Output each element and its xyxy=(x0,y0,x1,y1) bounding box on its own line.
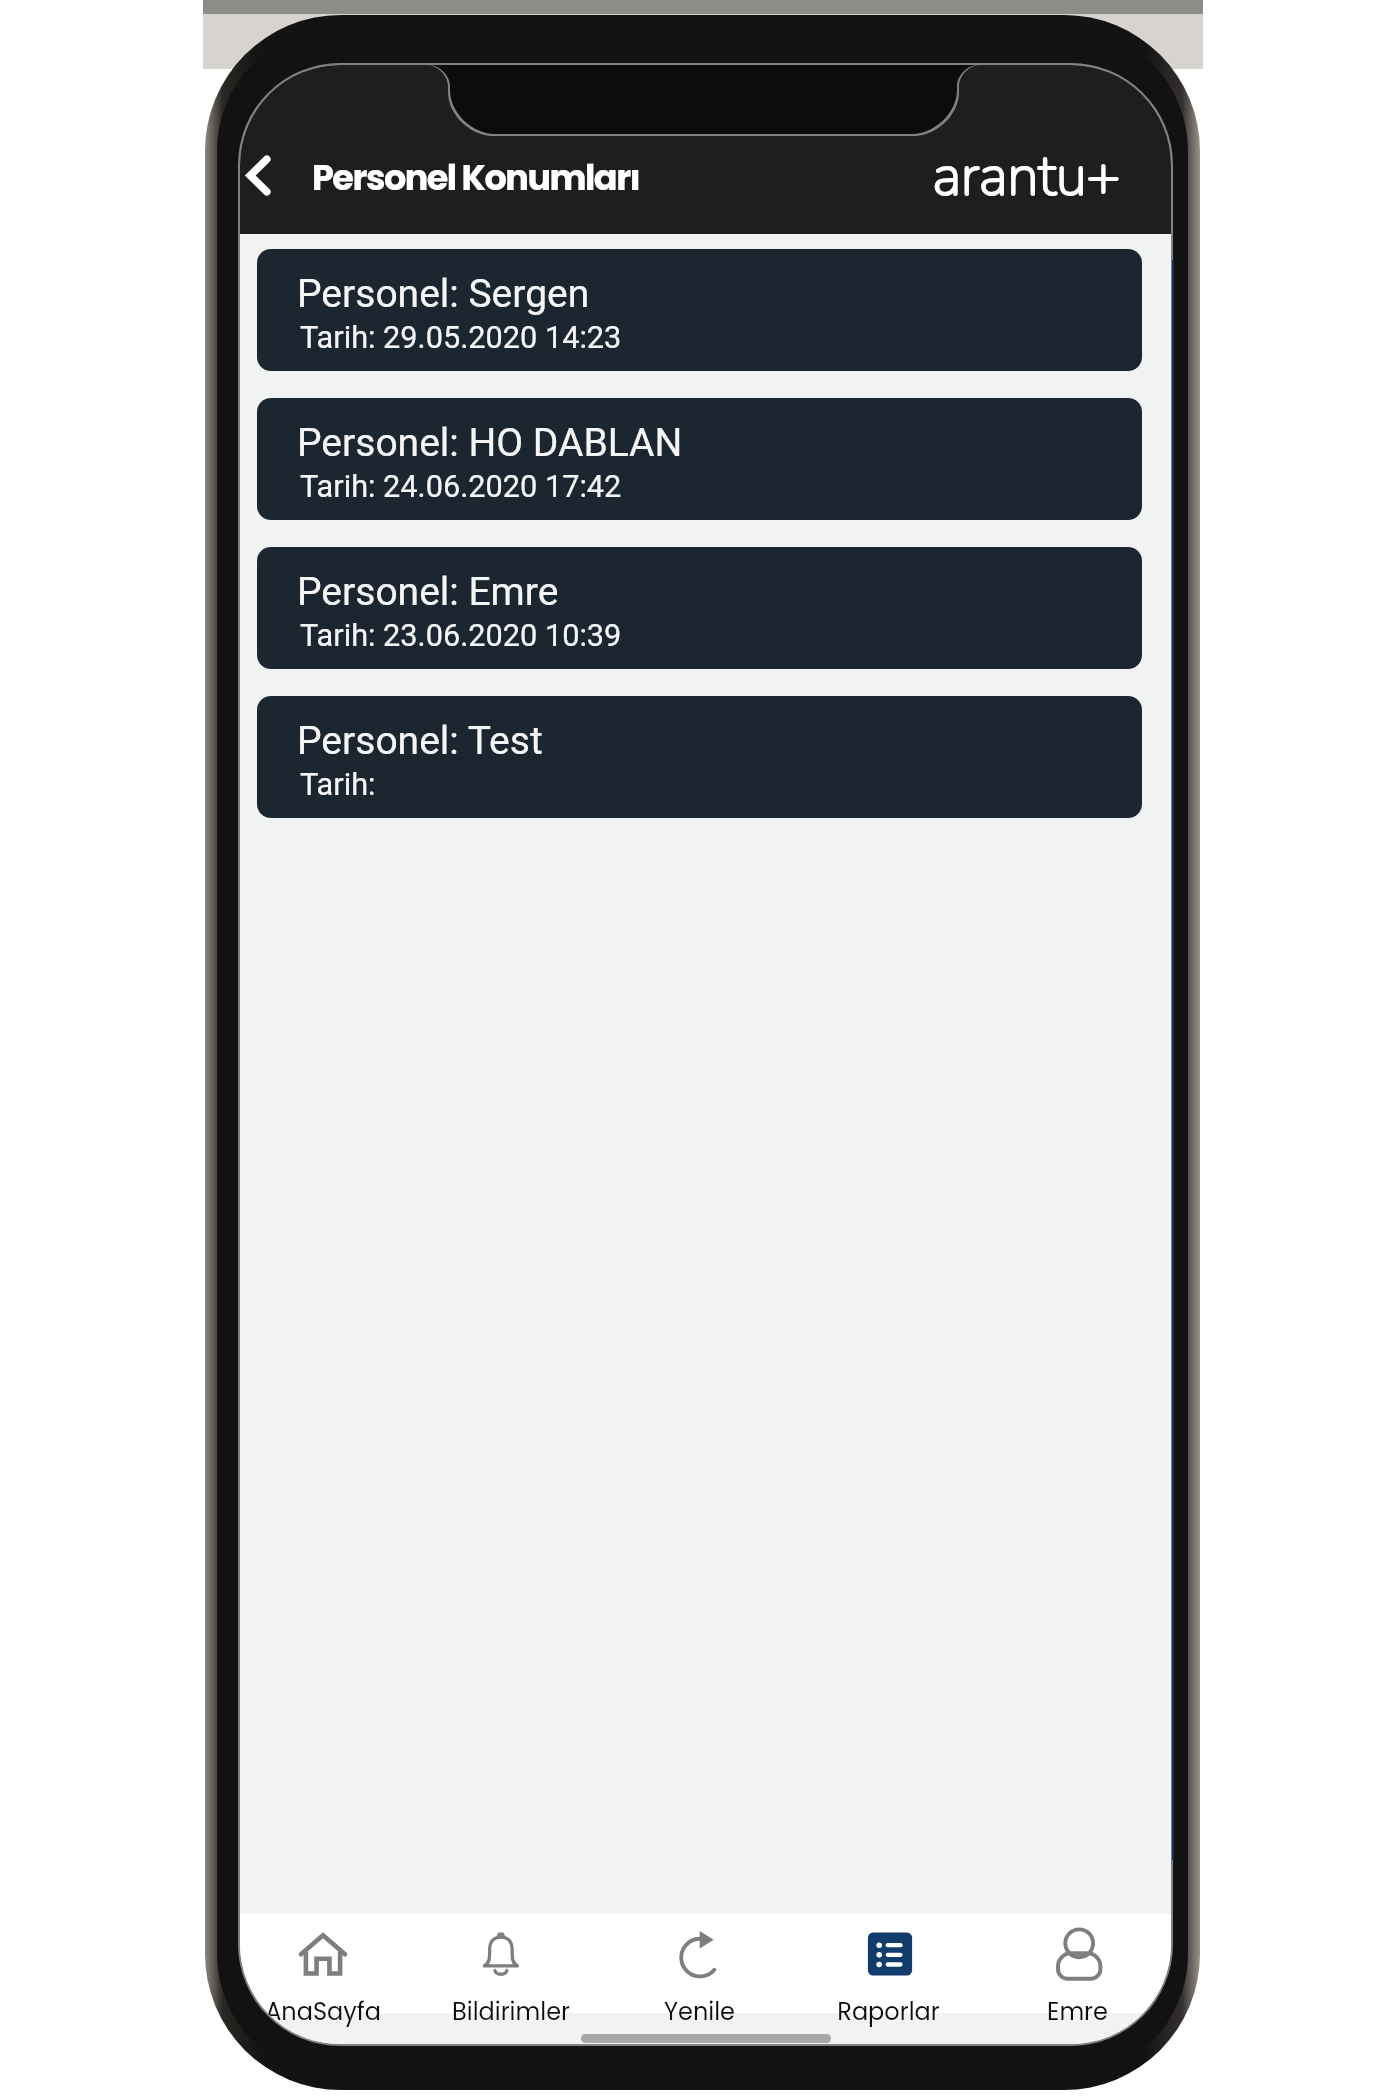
button[interactable]: Personel: Sergen xyxy=(257,249,1142,371)
staticText: Tarih: 23.06.2020 10:39 xyxy=(300,618,622,654)
button[interactable]: Personel: HO DABLAN xyxy=(257,398,1142,520)
staticText: Tarih: 29.05.2020 14:23 xyxy=(300,320,622,356)
staticText: Emre xyxy=(1047,1995,1108,2029)
staticText: Personel Konumları xyxy=(312,153,640,202)
button[interactable]: Back xyxy=(240,143,291,208)
button[interactable]: Raporlar xyxy=(794,1914,983,2013)
button[interactable]: Personel: Emre xyxy=(257,547,1142,669)
button[interactable]: Emre xyxy=(983,1914,1171,2013)
button[interactable]: Yenile xyxy=(605,1914,794,2013)
staticText: Personel: Sergen xyxy=(297,271,590,317)
staticText: Personel: Emre xyxy=(297,569,559,615)
staticText: Personel: Test xyxy=(297,718,543,764)
button[interactable]: Personel: Test xyxy=(257,696,1142,818)
button[interactable]: AnaSayfa xyxy=(240,1914,417,2013)
staticText: Yenile xyxy=(664,1995,735,2029)
staticText: arantu+ xyxy=(932,137,1120,215)
staticText: Personel: HO DABLAN xyxy=(297,420,683,466)
staticText: Raporlar xyxy=(837,1995,940,2029)
staticText: Tarih: 24.06.2020 17:42 xyxy=(300,469,622,505)
staticText: Tarih: xyxy=(300,767,376,803)
staticText: Bildirimler xyxy=(452,1995,570,2029)
staticText: AnaSayfa xyxy=(265,1995,381,2029)
button[interactable]: Bildirimler xyxy=(417,1914,605,2013)
